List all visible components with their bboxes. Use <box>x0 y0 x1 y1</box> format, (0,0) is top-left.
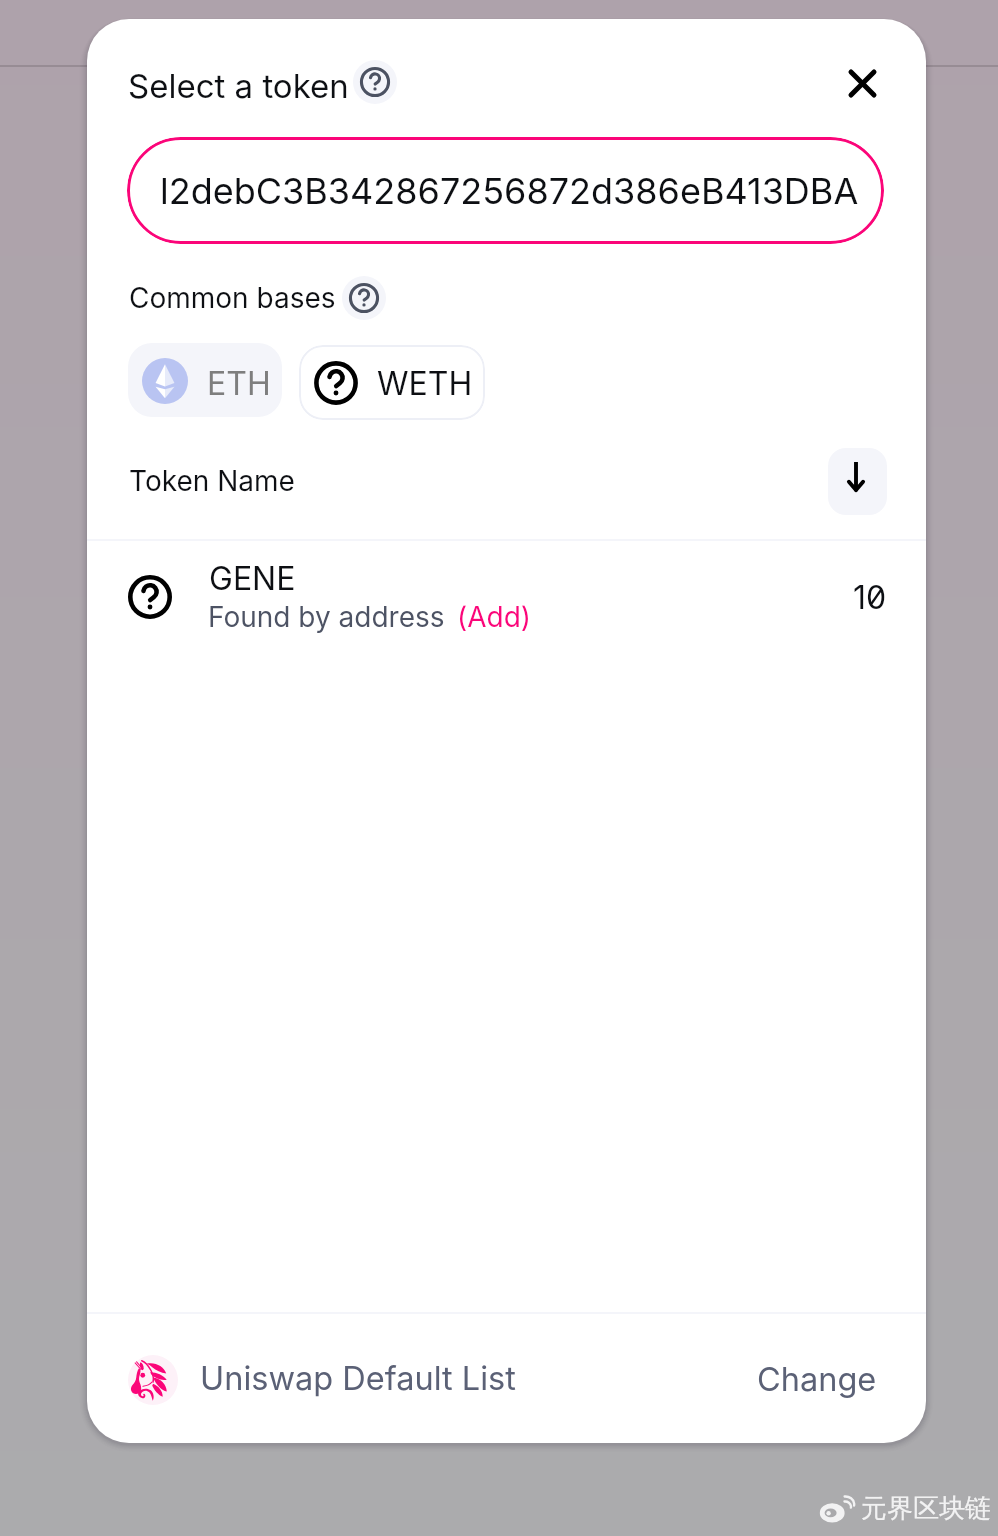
staticText: ETH <box>207 364 271 403</box>
staticText: l2debC3B342867256872d386eB413DBA <box>160 169 859 213</box>
staticText: WETH <box>377 364 473 403</box>
button[interactable]: Help <box>353 60 397 104</box>
button[interactable]: Uniswap Default List <box>200 1359 516 1398</box>
staticText: Select a token <box>128 66 349 106</box>
staticText: Found by address <box>208 600 445 634</box>
staticText: Common bases <box>129 281 336 315</box>
button[interactable] <box>87 541 926 653</box>
staticText: Token Name <box>129 464 295 498</box>
button[interactable] <box>128 343 282 417</box>
staticText: Change <box>757 1360 877 1399</box>
staticText: Uniswap Default List <box>200 1359 516 1398</box>
staticText: 元界区块链 <box>861 1492 991 1525</box>
button[interactable] <box>127 137 884 244</box>
button[interactable]: (Add) <box>457 600 532 634</box>
button[interactable]: Sort <box>828 448 887 515</box>
button[interactable] <box>299 345 485 420</box>
staticText: (Add) <box>457 600 532 634</box>
button[interactable]: Change <box>757 1360 877 1399</box>
staticText: 10 <box>853 578 887 617</box>
button[interactable]: Help <box>342 276 386 320</box>
staticText: GENE <box>209 559 296 598</box>
button[interactable]: Close <box>832 53 892 113</box>
